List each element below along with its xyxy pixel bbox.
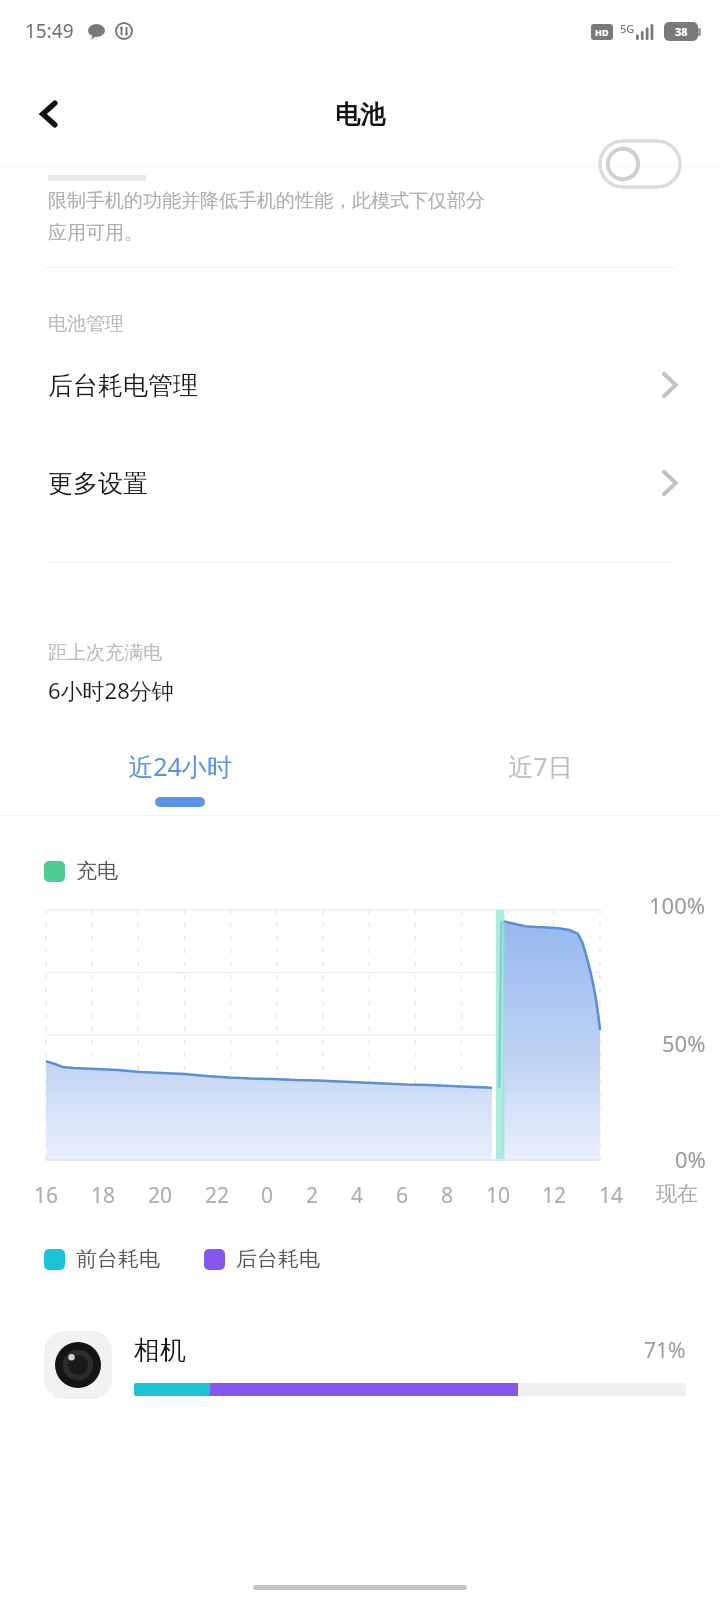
staticText: 0% — [675, 1144, 706, 1174]
staticText: 更多设置 — [48, 468, 148, 499]
staticText: 12 — [542, 1181, 567, 1210]
staticText: 近7日 — [508, 749, 573, 783]
button[interactable]: 近7日 — [360, 737, 720, 815]
staticText: 14 — [599, 1181, 624, 1210]
staticText: 5G — [620, 21, 635, 36]
staticText: 近24小时 — [128, 749, 232, 783]
staticText: 100% — [649, 890, 706, 920]
staticText: 0 — [261, 1181, 274, 1210]
staticText: 后台耗电 — [236, 1246, 320, 1272]
staticText: 4 — [351, 1181, 364, 1210]
staticText: 50% — [662, 1028, 706, 1058]
staticText: 2 — [306, 1181, 319, 1210]
staticText: 38 — [675, 24, 688, 39]
button[interactable]: 更多设置 — [0, 434, 720, 532]
staticText: 前台耗电 — [76, 1246, 160, 1272]
staticText: 应用可用。 — [48, 221, 143, 245]
staticText: 8 — [441, 1181, 454, 1210]
staticText: 电池 — [335, 99, 385, 130]
staticText: 距上次充满电 — [48, 641, 162, 665]
staticText: 15:49 — [25, 18, 74, 44]
staticText: 10 — [486, 1181, 511, 1210]
staticText: 22 — [205, 1181, 230, 1210]
staticText: 相机 — [134, 1334, 186, 1367]
button[interactable]: 后台耗电管理 — [0, 336, 720, 434]
staticText: 18 — [91, 1181, 116, 1210]
button[interactable]: 返回 — [22, 86, 78, 142]
staticText: 6小时28分钟 — [48, 675, 174, 705]
button[interactable]: 相机 — [0, 1310, 720, 1420]
staticText: 20 — [148, 1181, 173, 1210]
staticText: 电池管理 — [48, 312, 124, 336]
staticText: 16 — [34, 1181, 59, 1210]
staticText: 71% — [644, 1336, 686, 1365]
button[interactable]: 近24小时 — [0, 737, 360, 815]
staticText: 现在 — [656, 1181, 698, 1207]
staticText: 限制手机的功能并降低手机的性能，此模式下仅部分 — [48, 189, 485, 213]
staticText: 充电 — [76, 858, 118, 884]
staticText: 后台耗电管理 — [48, 370, 198, 401]
staticText: HD — [595, 26, 609, 38]
staticText: 6 — [396, 1181, 409, 1210]
